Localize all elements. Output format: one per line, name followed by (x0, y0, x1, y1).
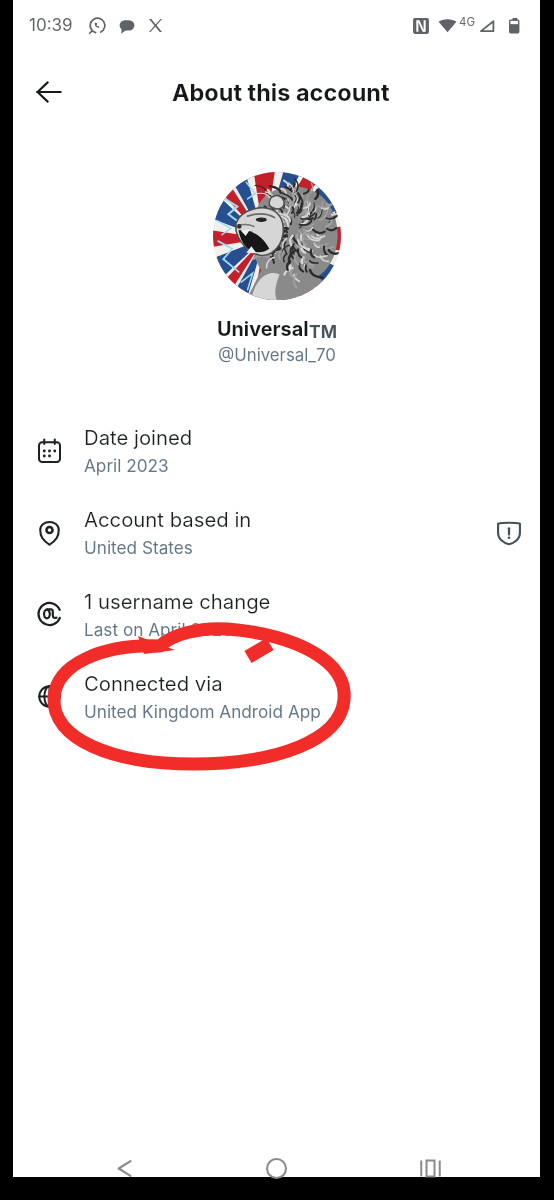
button[interactable]: Recent apps (410, 1148, 450, 1188)
staticText: About this account (172, 78, 390, 106)
button[interactable]: Back (26, 69, 72, 115)
staticText: 10:39 (29, 15, 73, 36)
staticText: Universal (217, 317, 309, 341)
staticText: @Universal_70 (218, 345, 336, 365)
button[interactable]: 1 username change (13, 573, 540, 655)
staticText: TM (309, 321, 337, 342)
staticText: 4G (459, 15, 476, 29)
button[interactable]: Date joined (13, 409, 540, 491)
button[interactable]: Home (256, 1148, 296, 1188)
staticText: Account based in (84, 507, 252, 532)
staticText: Connected via (84, 671, 223, 696)
staticText: United States (84, 537, 193, 558)
staticText: Last on April 2023 (84, 619, 233, 640)
button[interactable]: Back (104, 1148, 144, 1188)
staticText: April 2023 (84, 455, 169, 476)
staticText: 1 username change (84, 589, 271, 614)
staticText: United Kingdom Android App (84, 701, 321, 722)
button[interactable]: Connected via (13, 655, 540, 737)
button[interactable]: Account based in (13, 491, 540, 573)
staticText: Date joined (84, 425, 193, 450)
